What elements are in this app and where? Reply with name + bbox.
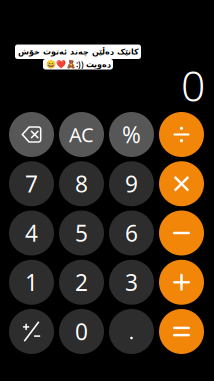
button[interactable]: 8: [59, 161, 104, 206]
staticText: 4: [25, 218, 38, 248]
button[interactable]: Equals: [159, 309, 204, 354]
button[interactable]: 4: [9, 210, 54, 255]
staticText: 3: [125, 267, 138, 297]
staticText: 0: [75, 316, 88, 346]
button[interactable]: 0: [59, 309, 104, 354]
staticText: 0: [181, 57, 205, 113]
button[interactable]: 2: [59, 260, 104, 305]
staticText: 1: [25, 267, 38, 297]
staticText: 2: [75, 267, 88, 297]
button[interactable]: 7: [9, 161, 54, 206]
staticText: %: [122, 119, 141, 149]
staticText: کاتێک دەڵێن چەند ئەتوت خۆش: [17, 47, 138, 56]
button[interactable]: 5: [59, 210, 104, 255]
staticText: 8: [75, 169, 88, 199]
button[interactable]: Multiply: [159, 161, 204, 206]
button[interactable]: 1: [9, 260, 54, 305]
staticText: 5: [75, 218, 88, 248]
staticText: 6: [125, 218, 138, 248]
button[interactable]: 3: [109, 260, 154, 305]
button[interactable]: 9: [109, 161, 154, 206]
button[interactable]: Divide: [159, 112, 204, 157]
button[interactable]: AC: [59, 112, 104, 157]
button[interactable]: Subtract: [159, 210, 204, 255]
button[interactable]: Add: [159, 260, 204, 305]
staticText: 9: [125, 169, 138, 199]
staticText: دەویت ((:🧸❤️😄: [45, 59, 110, 69]
staticText: AC: [69, 121, 94, 148]
button[interactable]: Delete: [9, 112, 54, 157]
button[interactable]: Decimal point: [109, 309, 154, 354]
staticText: 7: [25, 169, 38, 199]
button[interactable]: %: [109, 112, 154, 157]
button[interactable]: 6: [109, 210, 154, 255]
button[interactable]: Plus minus: [9, 309, 54, 354]
